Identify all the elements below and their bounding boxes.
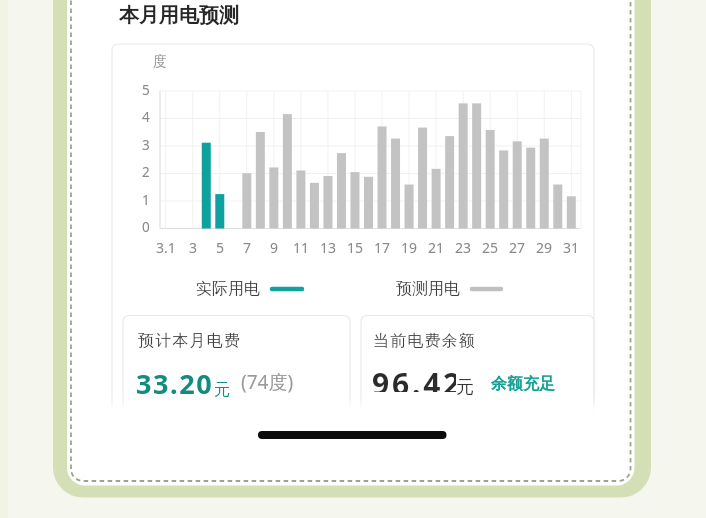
- staticText: 预测用电: [396, 279, 460, 296]
- staticText: 11: [293, 238, 310, 254]
- staticText: 5: [142, 81, 150, 99]
- button[interactable]: [361, 316, 594, 414]
- staticText: 度: [153, 53, 167, 71]
- staticText: 2: [142, 163, 150, 181]
- staticText: 96.42: [372, 363, 456, 392]
- staticText: 5: [216, 238, 225, 254]
- button[interactable]: [123, 316, 350, 414]
- staticText: 当前电费余额: [373, 331, 477, 348]
- staticText: 3: [142, 136, 150, 154]
- staticText: 17: [374, 238, 391, 254]
- staticText: 19: [401, 238, 418, 254]
- staticText: 1: [142, 191, 150, 209]
- staticText: 元: [456, 376, 474, 395]
- staticText: 21: [428, 238, 445, 254]
- staticText: 15: [347, 238, 364, 254]
- staticText: 33.20: [136, 365, 214, 394]
- staticText: 13: [320, 238, 337, 254]
- staticText: 余额充足: [491, 374, 555, 391]
- staticText: (74度): [241, 369, 294, 393]
- staticText: 3.1: [156, 238, 176, 254]
- staticText: 9: [270, 238, 279, 254]
- staticText: 本月用电预测: [119, 3, 239, 28]
- staticText: 元: [214, 380, 230, 397]
- staticText: 0: [142, 218, 150, 236]
- staticText: 4: [142, 108, 150, 126]
- staticText: 3: [189, 238, 198, 254]
- staticText: 25: [482, 238, 499, 254]
- staticText: 27: [509, 238, 526, 254]
- staticText: 实际用电: [196, 279, 260, 296]
- staticText: 23: [455, 238, 472, 254]
- staticText: 7: [243, 238, 252, 254]
- staticText: 31: [563, 238, 580, 254]
- staticText: 预计本月电费: [138, 331, 242, 348]
- staticText: 29: [536, 238, 553, 254]
